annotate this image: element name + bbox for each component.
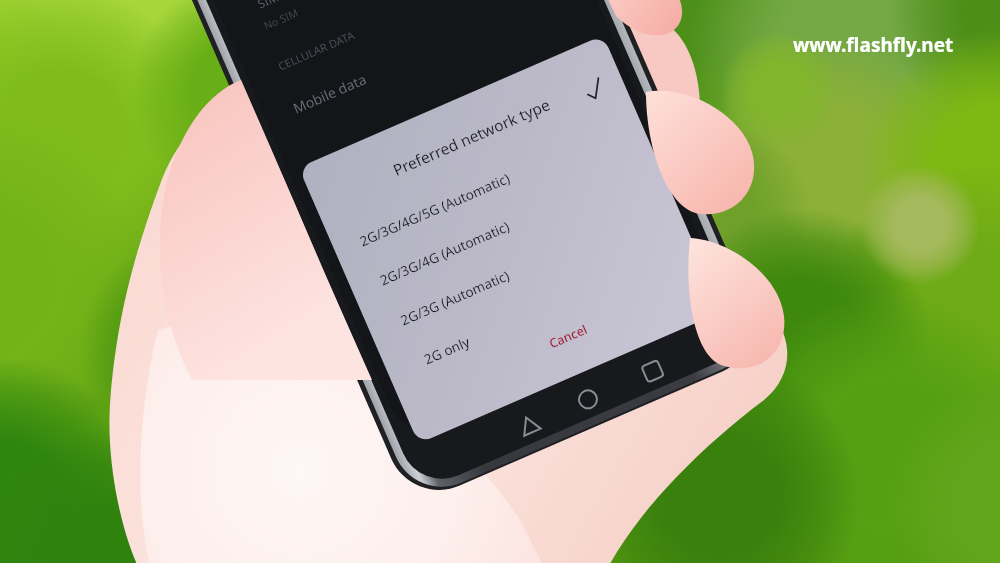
button[interactable]: 2G/3G/4G (Automatic) <box>345 130 655 296</box>
button[interactable]: Cancel <box>531 281 637 354</box>
button[interactable]: 2G/3G (Automatic) <box>365 169 675 335</box>
button[interactable]: www.flashfly.net <box>793 32 954 58</box>
button[interactable]: Back <box>490 392 555 453</box>
button[interactable]: Home <box>554 364 619 425</box>
button[interactable]: 2G/3G/4G/5G (Automatic) <box>325 91 635 257</box>
button[interactable]: Recent apps <box>618 336 683 397</box>
button[interactable]: 2G only <box>387 276 541 374</box>
